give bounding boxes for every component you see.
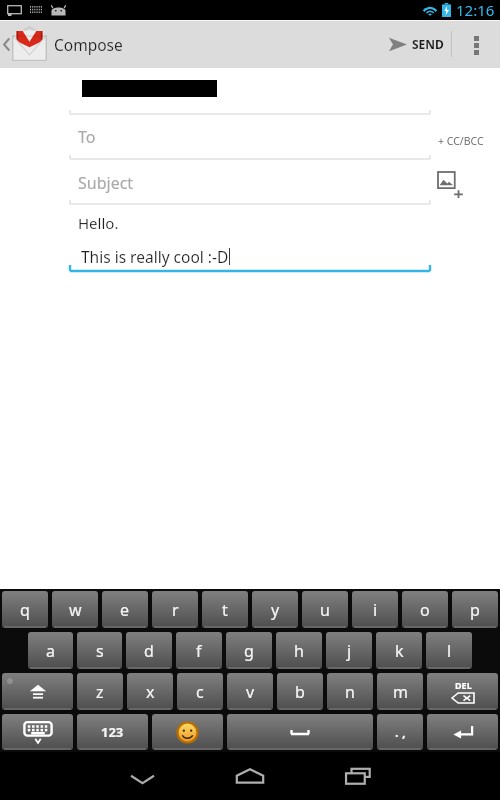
button[interactable]	[227, 714, 373, 750]
button[interactable]: d	[126, 632, 172, 669]
staticText: i	[373, 599, 378, 621]
staticText: n	[345, 681, 355, 703]
staticText: w	[69, 599, 82, 621]
button[interactable]: o	[402, 591, 448, 628]
button[interactable]: x	[127, 673, 173, 710]
staticText: j	[347, 640, 352, 662]
button[interactable]: Hide keyboard	[88, 752, 196, 800]
button[interactable]: h	[276, 632, 322, 669]
button[interactable]: v	[227, 673, 273, 710]
staticText: v	[246, 681, 255, 703]
staticText: q	[20, 599, 30, 621]
staticText: x	[146, 681, 155, 703]
staticText: t	[222, 599, 228, 621]
staticText: Hello.	[78, 213, 119, 233]
staticText: o	[420, 599, 430, 621]
button[interactable]: c	[177, 673, 223, 710]
staticText: s	[96, 640, 104, 662]
staticText: y	[271, 599, 280, 621]
button[interactable]: + CC/BCC	[438, 134, 484, 148]
staticText: g	[244, 640, 254, 662]
button[interactable]: n	[327, 673, 373, 710]
button[interactable]: e	[102, 591, 148, 628]
staticText: To	[78, 126, 96, 148]
staticText: u	[320, 599, 330, 621]
button[interactable]: Recent apps	[304, 752, 412, 800]
staticText: d	[144, 640, 154, 662]
staticText: DEL	[455, 679, 472, 691]
staticText: 12:16	[456, 0, 495, 20]
button[interactable]: Home	[196, 752, 304, 800]
staticText: + CC/BCC	[438, 134, 484, 148]
button[interactable]: m	[377, 673, 423, 710]
button[interactable]: DEL	[427, 673, 498, 710]
staticText: 123	[101, 723, 124, 741]
button[interactable]: . ,	[377, 714, 423, 750]
button[interactable]	[152, 714, 223, 750]
staticText: z	[96, 681, 104, 703]
button[interactable]	[2, 673, 73, 710]
button[interactable]: z	[77, 673, 123, 710]
staticText: Compose	[54, 34, 123, 55]
staticText: k	[395, 640, 404, 662]
button[interactable]: q	[2, 591, 48, 628]
staticText: b	[295, 681, 305, 703]
button[interactable]: u	[302, 591, 348, 628]
button[interactable]: t	[202, 591, 248, 628]
button[interactable]: More options	[452, 20, 500, 68]
button[interactable]: 123	[77, 714, 148, 750]
button[interactable]: w	[52, 591, 98, 628]
staticText: m	[393, 681, 408, 703]
button[interactable]: l	[426, 632, 472, 669]
staticText: c	[196, 681, 204, 703]
button[interactable]: f	[176, 632, 222, 669]
staticText: p	[470, 599, 480, 621]
button[interactable]: j	[326, 632, 372, 669]
staticText: f	[196, 640, 202, 662]
button[interactable]: i	[352, 591, 398, 628]
staticText: e	[120, 599, 130, 621]
button[interactable]: y	[252, 591, 298, 628]
button[interactable]: Compose	[0, 20, 123, 68]
button[interactable]: r	[152, 591, 198, 628]
button[interactable]: SEND	[379, 20, 451, 68]
staticText: SEND	[412, 36, 444, 52]
button[interactable]	[2, 714, 73, 750]
staticText: a	[46, 640, 55, 662]
button[interactable]: k	[376, 632, 422, 669]
staticText: Subject	[78, 172, 134, 194]
button[interactable]	[427, 714, 498, 750]
staticText: This is really cool :-D	[81, 246, 229, 267]
button[interactable]: b	[277, 673, 323, 710]
staticText: l	[447, 640, 452, 662]
button[interactable]: s	[77, 632, 122, 669]
staticText: . ,	[395, 723, 406, 741]
button[interactable]: p	[452, 591, 498, 628]
staticText: h	[294, 640, 304, 662]
button[interactable]: g	[226, 632, 272, 669]
staticText: r	[172, 599, 179, 621]
button[interactable]: a	[28, 632, 73, 669]
button[interactable]: Attach image	[438, 172, 465, 198]
